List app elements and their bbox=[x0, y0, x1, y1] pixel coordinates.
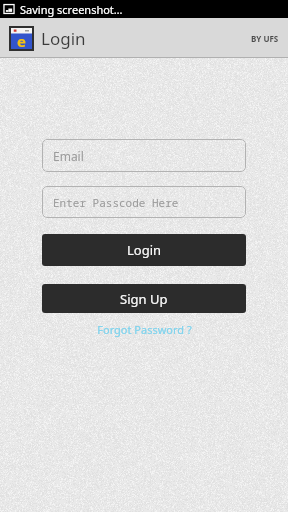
staticText: Email bbox=[53, 148, 84, 164]
other: Screenshot saved bbox=[3, 3, 15, 15]
staticText: Login bbox=[127, 241, 162, 259]
other: App logo bbox=[9, 26, 34, 51]
staticText: Sign Up bbox=[120, 290, 168, 308]
staticText: Forgot Password ? bbox=[97, 322, 192, 337]
button[interactable]: Forgot Password ? bbox=[42, 322, 246, 337]
button[interactable]: Email bbox=[42, 139, 246, 172]
staticText: BY UFS bbox=[251, 33, 279, 44]
staticText: Saving screenshot… bbox=[20, 2, 123, 17]
button[interactable]: Enter Passcode Here bbox=[42, 186, 246, 218]
button[interactable]: Sign Up bbox=[42, 284, 246, 313]
staticText: e bbox=[17, 31, 26, 51]
staticText: Enter Passcode Here bbox=[53, 195, 179, 210]
staticText: Login bbox=[41, 27, 86, 50]
button[interactable]: Login bbox=[42, 234, 246, 266]
